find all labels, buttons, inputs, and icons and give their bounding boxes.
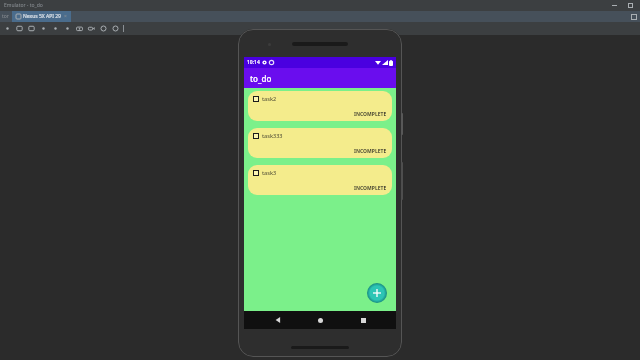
staticText: × — [64, 13, 67, 20]
button[interactable]: Minimize — [610, 1, 619, 10]
staticText: INCOMPLETE — [354, 185, 387, 192]
button[interactable]: Emulator control 9 — [111, 24, 120, 33]
button[interactable]: Back — [269, 311, 287, 329]
button[interactable]: Emulator control 1 — [15, 24, 24, 33]
staticText: Nexus 5X API 29 — [23, 13, 61, 20]
button[interactable]: Toggle task3 complete — [248, 165, 392, 195]
staticText: task2 — [262, 95, 277, 102]
button[interactable]: Toggle task2 complete — [248, 91, 392, 121]
staticText: INCOMPLETE — [354, 148, 387, 155]
button[interactable]: Toggle task3 complete — [253, 170, 259, 176]
button[interactable]: Emulator control 0 — [3, 24, 12, 33]
button[interactable]: Emulator control 8 — [99, 24, 108, 33]
button[interactable]: Emulator control 3 — [39, 24, 48, 33]
button[interactable]: Emulator control 4 — [51, 24, 60, 33]
button[interactable]: Emulator control 2 — [27, 24, 36, 33]
button[interactable]: Toggle task333 complete — [248, 128, 392, 158]
button[interactable]: Emulator control 6 — [75, 24, 84, 33]
staticText: task3 — [262, 169, 277, 176]
staticText: Emulator - to_do — [4, 2, 43, 9]
button[interactable]: Panel options — [631, 14, 637, 20]
button[interactable]: Toggle task2 complete — [253, 96, 259, 102]
staticText: INCOMPLETE — [354, 111, 387, 118]
staticText: to_do — [250, 73, 272, 84]
button[interactable]: Nexus 5X API 29 — [16, 11, 67, 22]
staticText: tor — [2, 13, 9, 20]
staticText: 10:14 — [247, 59, 260, 66]
button[interactable]: Toggle task333 complete — [253, 133, 259, 139]
button[interactable]: Maximize — [626, 1, 635, 10]
button[interactable]: Home — [311, 311, 329, 329]
button[interactable]: Recent apps — [354, 311, 372, 329]
button[interactable]: Emulator control 7 — [87, 24, 96, 33]
button[interactable]: Add task — [367, 283, 387, 303]
button[interactable]: Emulator control 5 — [63, 24, 72, 33]
staticText: task333 — [262, 132, 283, 139]
